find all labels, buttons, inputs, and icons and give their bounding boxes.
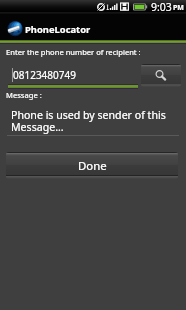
button[interactable]: Search: [141, 64, 181, 87]
staticText: Phone is used by sender of this Message.…: [11, 108, 183, 134]
button[interactable]: Phone is used by sender of this Message.…: [6, 102, 178, 136]
staticText: Done: [78, 158, 107, 174]
staticText: Enter the phone number of recipient :: [6, 47, 141, 57]
staticText: Message :: [6, 90, 42, 100]
staticText: 08123480749: [13, 68, 76, 82]
staticText: PM: [173, 3, 184, 13]
button[interactable]: Done: [6, 152, 178, 179]
staticText: 9:03: [151, 0, 172, 14]
staticText: PhoneLocator: [25, 23, 91, 36]
